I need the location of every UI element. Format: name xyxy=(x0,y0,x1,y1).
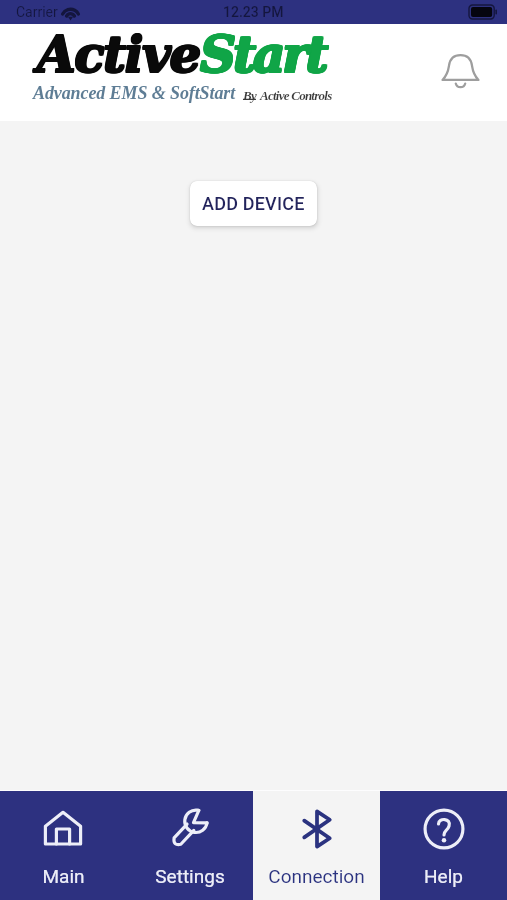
staticText: Start xyxy=(199,24,325,83)
staticText: Active xyxy=(37,26,200,85)
staticText: Start xyxy=(200,24,326,83)
staticText: Active xyxy=(38,26,201,85)
staticText: Connection xyxy=(268,865,365,887)
staticText: Active xyxy=(38,25,201,84)
staticText: Active xyxy=(36,26,199,85)
staticText: Start xyxy=(201,26,327,85)
staticText: Active xyxy=(36,25,199,84)
button[interactable]: Connection xyxy=(253,791,380,900)
staticText: Active xyxy=(37,25,200,84)
staticText: Main xyxy=(42,865,85,887)
staticText: Start xyxy=(200,25,326,84)
staticText: Start xyxy=(201,25,327,84)
staticText: Active xyxy=(37,24,200,83)
staticText: Carrier xyxy=(16,4,58,20)
staticText: Active xyxy=(38,24,201,83)
staticText: Active xyxy=(37,24,200,83)
button[interactable]: Help xyxy=(380,791,507,900)
staticText: Start xyxy=(200,24,326,83)
button[interactable]: ADD DEVICE xyxy=(190,181,317,226)
staticText: Start xyxy=(200,26,326,85)
button[interactable]: Settings xyxy=(126,791,253,900)
staticText: ADD DEVICE xyxy=(202,193,305,214)
staticText: 12.23 PM xyxy=(223,4,284,20)
button[interactable]: Main xyxy=(0,791,126,900)
staticText: Start xyxy=(199,26,325,85)
staticText: Active xyxy=(36,24,199,83)
staticText: Start xyxy=(200,26,326,85)
staticText: Active Controls xyxy=(260,88,332,102)
staticText: Settings xyxy=(155,865,225,887)
staticText: Advanced EMS & SoftStart xyxy=(33,83,236,103)
staticText: Active xyxy=(37,26,200,85)
staticText: Start xyxy=(199,25,325,84)
staticText: By xyxy=(243,88,256,102)
staticText: Help xyxy=(424,865,463,887)
staticText: Start xyxy=(201,24,327,83)
button[interactable]: Notifications xyxy=(432,44,488,100)
